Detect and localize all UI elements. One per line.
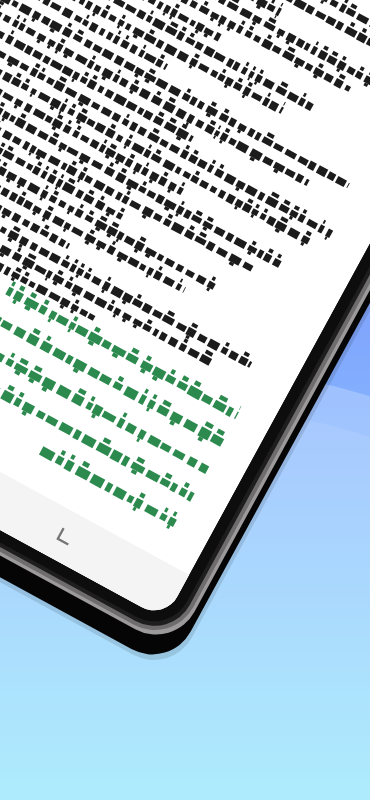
button[interactable]: Phone app preview [0, 0, 370, 800]
